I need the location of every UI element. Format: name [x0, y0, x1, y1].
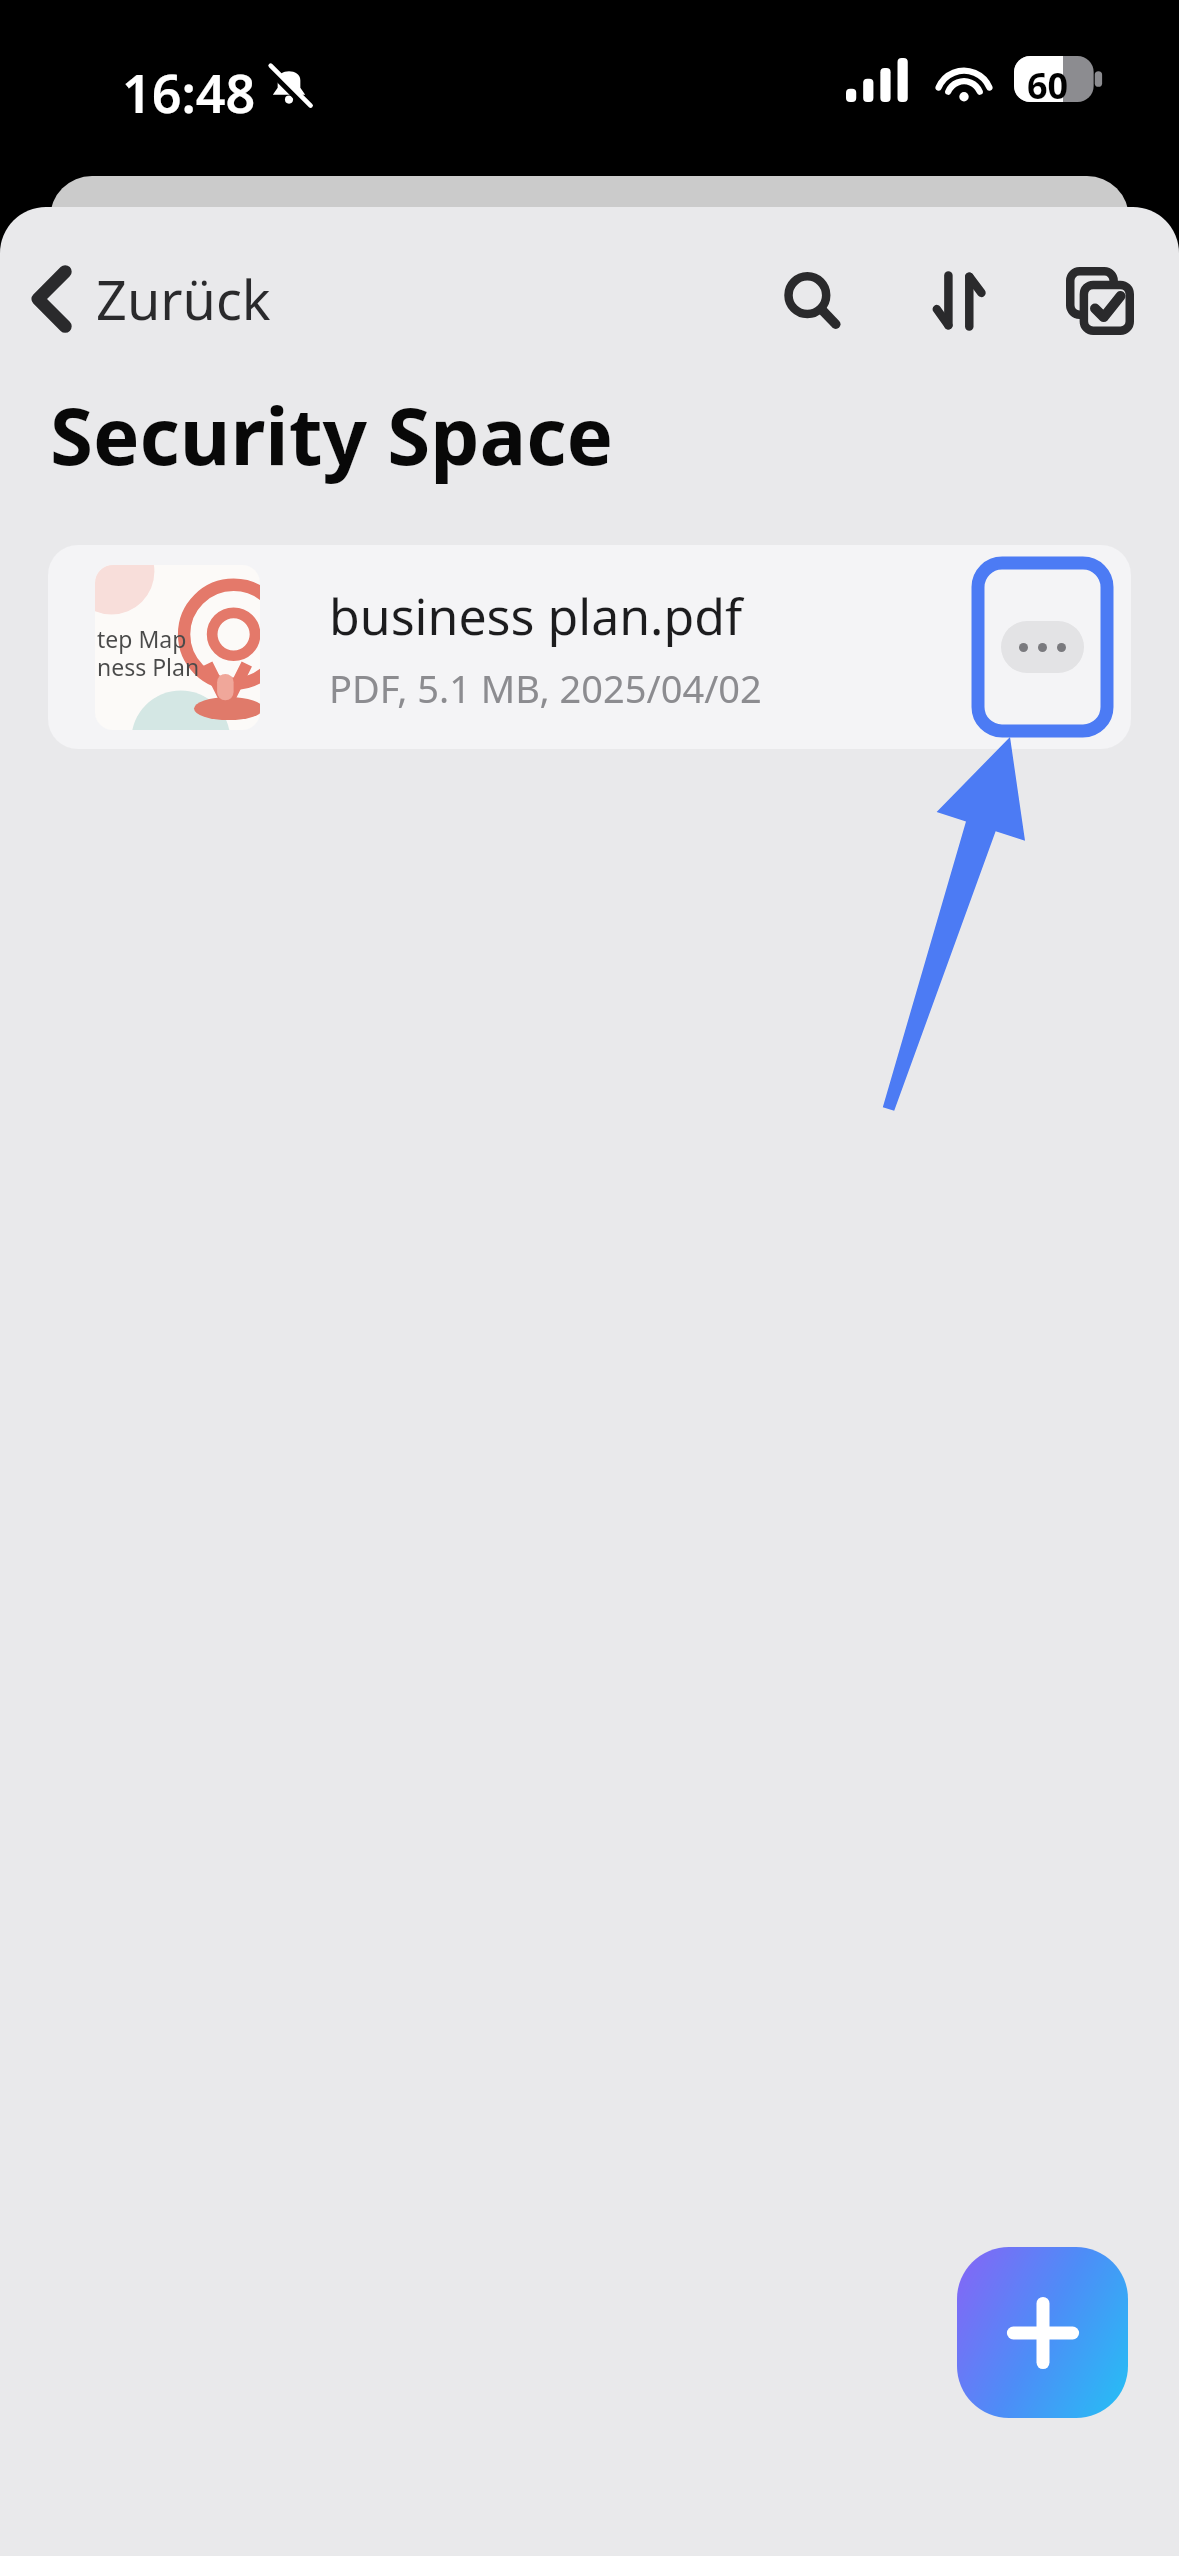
staticText: PDF, 5.1 MB, 2025/04/02 [329, 662, 762, 714]
staticText: Security Space [50, 382, 614, 488]
button[interactable]: Search [760, 249, 864, 353]
staticText: tep Map ness Plan [97, 623, 200, 683]
staticText: Zurück [96, 262, 271, 336]
staticText: 60 [1027, 61, 1069, 110]
button[interactable]: Select all [1048, 249, 1152, 353]
staticText: 16:48 [122, 57, 256, 128]
button[interactable]: Sort [908, 249, 1012, 353]
button[interactable]: More options [973, 558, 1112, 736]
staticText: business plan.pdf [329, 582, 743, 650]
button[interactable]: Add [957, 2247, 1128, 2418]
button[interactable]: tep Map ness Plan [48, 545, 1131, 749]
button[interactable]: Zurück [12, 239, 289, 359]
